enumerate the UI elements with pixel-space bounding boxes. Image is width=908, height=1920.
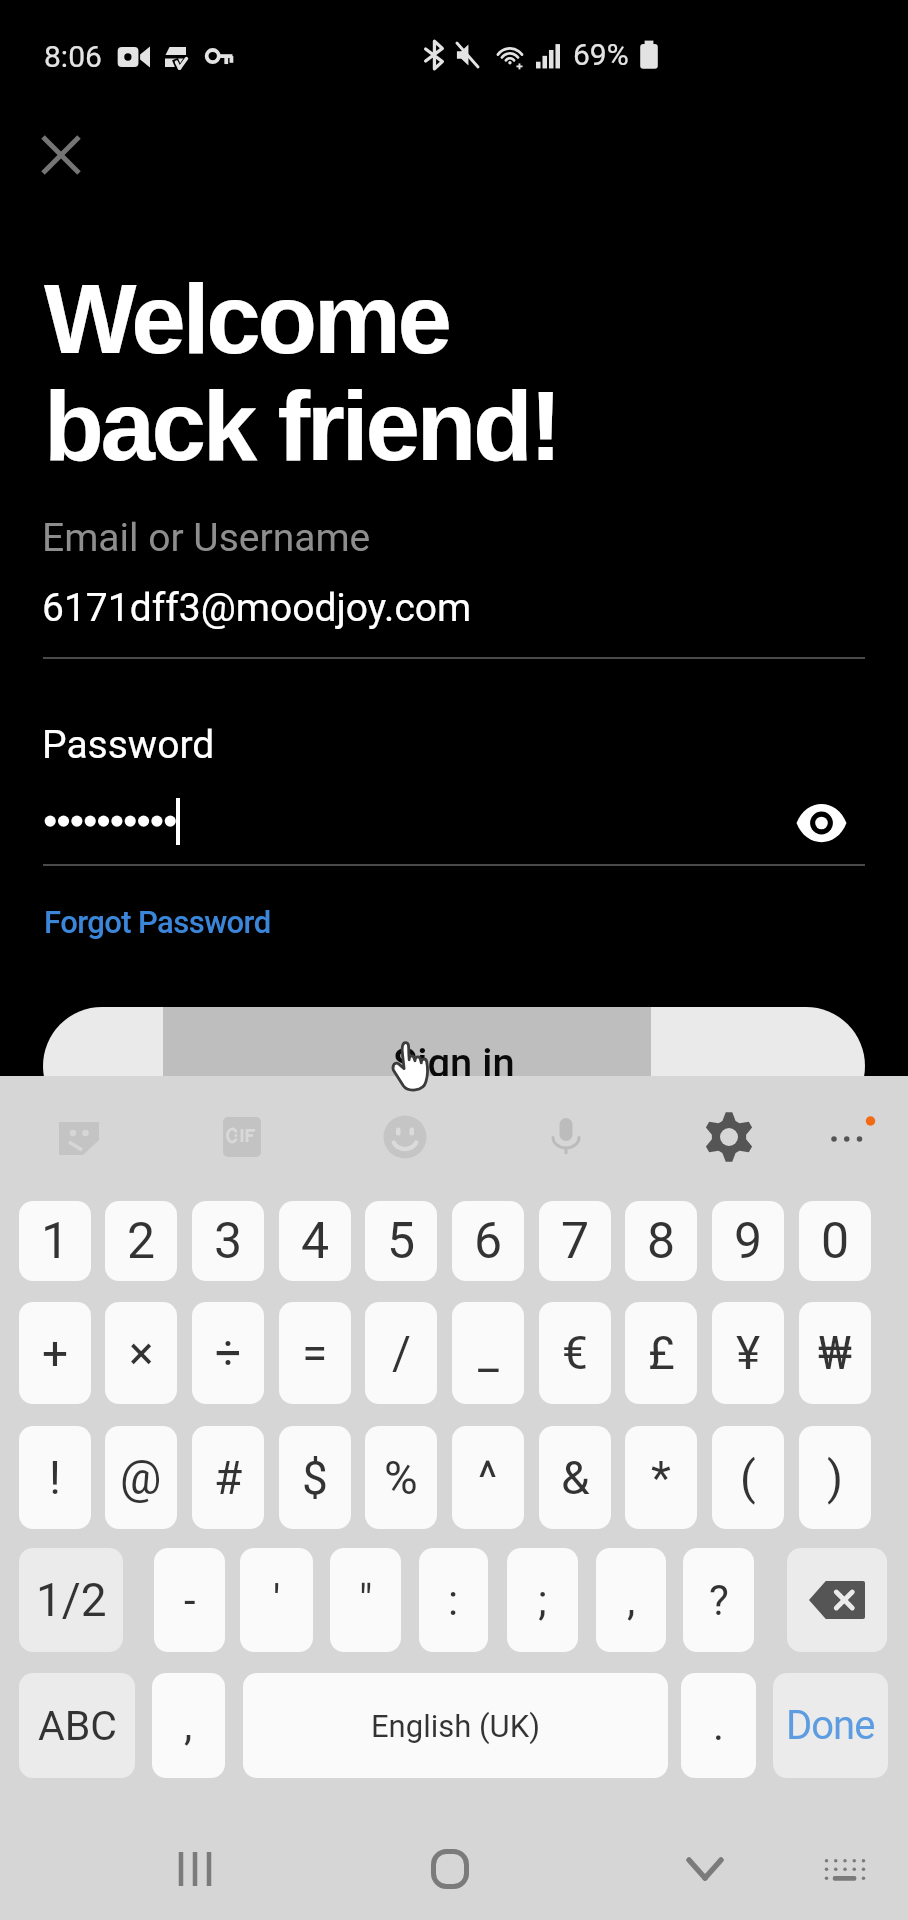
button[interactable]: 0 (799, 1201, 871, 1281)
staticText: Welcome (44, 264, 449, 373)
staticText: = (302, 1326, 328, 1380)
button[interactable]: _ (452, 1302, 524, 1404)
staticText: Done (786, 1702, 875, 1749)
button[interactable]: Sign in (43, 1007, 865, 1125)
staticText: 5 (387, 1212, 416, 1271)
button[interactable]: Stickers (39, 1097, 119, 1177)
button[interactable]: ' (240, 1548, 313, 1652)
button[interactable]: . (681, 1673, 756, 1778)
button[interactable]: ÷ (192, 1302, 264, 1404)
staticText: × (129, 1326, 154, 1380)
button[interactable]: ! (19, 1426, 91, 1529)
button[interactable]: Emoji (365, 1097, 445, 1177)
button[interactable]: 3 (192, 1201, 264, 1281)
staticText: , (184, 1701, 193, 1750)
staticText: : (448, 1576, 459, 1625)
button[interactable]: ( (712, 1426, 784, 1529)
button[interactable]: ¥ (712, 1302, 784, 1404)
staticText: 7 (561, 1212, 590, 1271)
button[interactable]: = (279, 1302, 351, 1404)
button[interactable]: ) (799, 1426, 871, 1529)
staticText: 3 (214, 1212, 243, 1271)
button[interactable]: ? (683, 1548, 754, 1652)
button[interactable]: Voice input (526, 1097, 606, 1177)
staticText: ÷ (215, 1326, 242, 1380)
button[interactable]: Show password (781, 783, 861, 863)
button[interactable]: " (330, 1548, 401, 1652)
button[interactable]: ABC (19, 1673, 135, 1778)
button[interactable]: £ (625, 1302, 697, 1404)
button[interactable]: Close (21, 115, 101, 195)
button[interactable]: 5 (365, 1201, 437, 1281)
staticText: £ (648, 1326, 675, 1380)
staticText: % (384, 1451, 418, 1505)
button[interactable]: 9 (712, 1201, 784, 1281)
button[interactable]: Home (394, 1819, 506, 1919)
button[interactable]: % (365, 1426, 437, 1529)
staticText: 6171dff3@moodjoy.com (42, 585, 472, 631)
button[interactable]: 6 (452, 1201, 524, 1281)
staticText: $ (302, 1451, 328, 1505)
staticText: ; (538, 1576, 547, 1625)
staticText: 4 (301, 1212, 330, 1271)
button[interactable]: # (192, 1426, 264, 1529)
staticText: Sign in (393, 1040, 515, 1087)
staticText: ¥ (736, 1326, 761, 1380)
staticText: 8:06 (44, 39, 102, 74)
button[interactable]: , (596, 1548, 666, 1652)
staticText: 69% (573, 37, 629, 72)
button[interactable]: Forgot Password (34, 898, 281, 946)
button[interactable]: × (105, 1302, 177, 1404)
staticText: ( (740, 1451, 756, 1505)
staticText: 6 (474, 1212, 503, 1271)
button[interactable]: € (539, 1302, 611, 1404)
staticText: ? (709, 1576, 729, 1625)
staticText: 1/2 (36, 1573, 107, 1627)
button[interactable]: Recents (139, 1819, 251, 1919)
staticText: € (562, 1326, 588, 1380)
button[interactable]: GIF (202, 1097, 282, 1177)
staticText: 1 (41, 1212, 70, 1271)
staticText: - (184, 1576, 196, 1625)
button[interactable]: More options (806, 1097, 886, 1177)
button[interactable]: / (365, 1302, 437, 1404)
button[interactable]: Done (773, 1673, 888, 1778)
button[interactable]: & (539, 1426, 611, 1529)
button[interactable]: ; (507, 1548, 578, 1652)
button[interactable]: Change keyboard (789, 1819, 901, 1919)
button[interactable]: @ (105, 1426, 177, 1529)
staticText: 2 (127, 1212, 156, 1271)
staticText: ABC (38, 1702, 117, 1750)
button[interactable]: : (419, 1548, 488, 1652)
button[interactable] (787, 1548, 887, 1652)
staticText: . (713, 1701, 725, 1750)
button[interactable]: ₩ (799, 1302, 871, 1404)
button[interactable]: English (UK) (243, 1673, 668, 1778)
staticText: Forgot Password (44, 904, 271, 940)
staticText: * (651, 1451, 671, 1505)
staticText: English (UK) (371, 1708, 540, 1744)
staticText: Email or Username (42, 515, 371, 561)
staticText: ^ (478, 1451, 498, 1505)
button[interactable]: * (625, 1426, 697, 1529)
staticText: # (214, 1451, 243, 1505)
button[interactable]: 7 (539, 1201, 611, 1281)
button[interactable]: 4 (279, 1201, 351, 1281)
staticText: ) (827, 1451, 844, 1505)
button[interactable]: + (19, 1302, 91, 1404)
button[interactable]: - (154, 1548, 225, 1652)
staticText: + (42, 1326, 69, 1380)
button[interactable]: $ (279, 1426, 351, 1529)
button[interactable]: 2 (105, 1201, 177, 1281)
staticText: back friend! (44, 371, 559, 480)
staticText: , (627, 1576, 636, 1625)
button[interactable]: Settings (689, 1097, 769, 1177)
button[interactable]: ^ (452, 1426, 524, 1529)
staticText: / (392, 1326, 411, 1380)
button[interactable]: 1/2 (19, 1548, 123, 1652)
staticText: " (359, 1576, 373, 1625)
button[interactable]: Hide keyboard (649, 1819, 761, 1919)
button[interactable]: , (152, 1673, 225, 1778)
button[interactable]: 1 (19, 1201, 91, 1281)
button[interactable]: 8 (625, 1201, 697, 1281)
